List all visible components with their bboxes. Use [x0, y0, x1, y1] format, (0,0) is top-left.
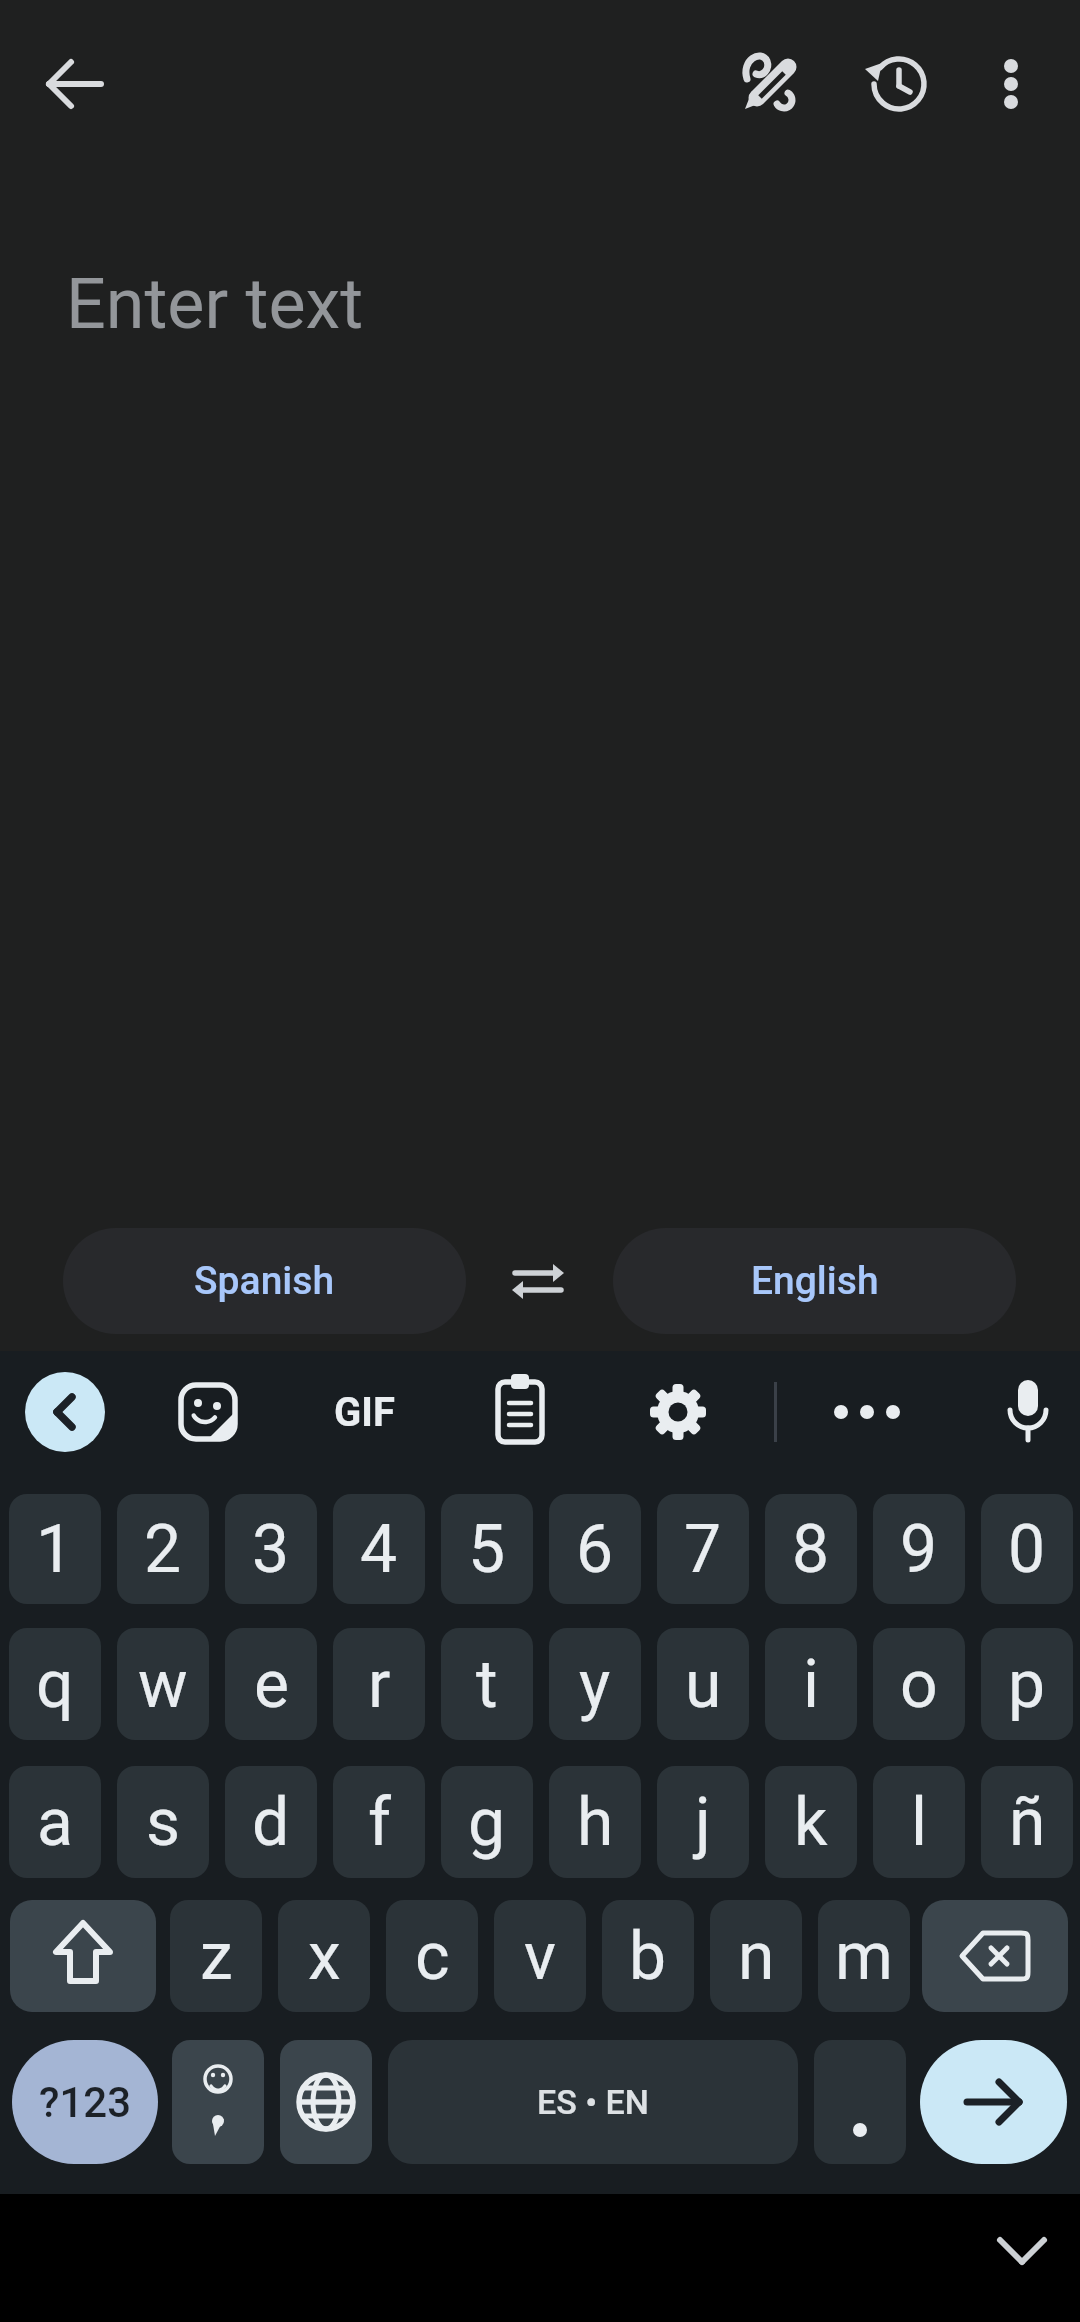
- staticText: 9: [900, 1511, 938, 1588]
- staticText: x: [308, 1918, 341, 1995]
- button[interactable]: [472, 1364, 568, 1460]
- button[interactable]: [10, 1900, 156, 2012]
- staticText: b: [629, 1918, 667, 1995]
- button[interactable]: y: [549, 1628, 641, 1740]
- button[interactable]: g: [441, 1766, 533, 1878]
- button[interactable]: h: [549, 1766, 641, 1878]
- button[interactable]: [922, 1900, 1068, 2012]
- staticText: GIF: [334, 1389, 395, 1436]
- staticText: w: [138, 1646, 188, 1723]
- staticText: ñ: [1009, 1784, 1046, 1861]
- button[interactable]: r: [333, 1628, 425, 1740]
- button[interactable]: q: [9, 1628, 101, 1740]
- button[interactable]: 9: [873, 1494, 965, 1604]
- staticText: y: [579, 1646, 611, 1723]
- button[interactable]: l: [873, 1766, 965, 1878]
- button[interactable]: v: [494, 1900, 586, 2012]
- staticText: a: [37, 1784, 73, 1861]
- button[interactable]: w: [117, 1628, 209, 1740]
- button[interactable]: [490, 1233, 586, 1329]
- staticText: p: [1008, 1646, 1046, 1723]
- staticText: Spanish: [194, 1258, 335, 1304]
- staticText: k: [794, 1784, 828, 1861]
- button[interactable]: c: [386, 1900, 478, 2012]
- button[interactable]: e: [225, 1628, 317, 1740]
- button[interactable]: [280, 2040, 372, 2164]
- staticText: Enter text: [66, 263, 364, 345]
- staticText: l: [911, 1784, 928, 1861]
- button[interactable]: m: [818, 1900, 910, 2012]
- button[interactable]: [819, 1364, 915, 1460]
- staticText: z: [200, 1918, 233, 1995]
- button[interactable]: 5: [441, 1494, 533, 1604]
- staticText: f: [368, 1784, 391, 1861]
- button[interactable]: [25, 1372, 105, 1452]
- button[interactable]: [814, 2040, 906, 2164]
- staticText: v: [524, 1918, 556, 1995]
- button[interactable]: 8: [765, 1494, 857, 1604]
- button[interactable]: [974, 2202, 1070, 2298]
- button[interactable]: i: [765, 1628, 857, 1740]
- staticText: 7: [684, 1511, 722, 1588]
- button[interactable]: x: [278, 1900, 370, 2012]
- button[interactable]: 0: [981, 1494, 1073, 1604]
- button[interactable]: z: [170, 1900, 262, 2012]
- staticText: j: [695, 1784, 711, 1861]
- button[interactable]: English: [613, 1228, 1016, 1334]
- staticText: s: [146, 1784, 181, 1861]
- button[interactable]: [963, 36, 1059, 132]
- staticText: t: [476, 1646, 498, 1723]
- button[interactable]: ES • EN: [388, 2040, 798, 2164]
- button[interactable]: o: [873, 1628, 965, 1740]
- button[interactable]: [630, 1364, 726, 1460]
- staticText: 6: [576, 1511, 614, 1588]
- button[interactable]: j: [657, 1766, 749, 1878]
- staticText: English: [751, 1258, 879, 1304]
- button[interactable]: [851, 36, 947, 132]
- button[interactable]: [920, 2040, 1067, 2164]
- staticText: u: [685, 1646, 722, 1723]
- staticText: ?123: [39, 2078, 132, 2127]
- staticText: 5: [468, 1511, 506, 1588]
- button[interactable]: u: [657, 1628, 749, 1740]
- staticText: ES • EN: [537, 2082, 649, 2122]
- staticText: h: [577, 1784, 614, 1861]
- button[interactable]: [25, 36, 121, 132]
- button[interactable]: ?123: [12, 2040, 158, 2164]
- staticText: 1: [36, 1511, 74, 1588]
- button[interactable]: 7: [657, 1494, 749, 1604]
- staticText: 4: [360, 1511, 398, 1588]
- button[interactable]: b: [602, 1900, 694, 2012]
- button[interactable]: 2: [117, 1494, 209, 1604]
- button[interactable]: [160, 1364, 256, 1460]
- staticText: 2: [144, 1511, 182, 1588]
- staticText: 0: [1008, 1511, 1046, 1588]
- button[interactable]: 4: [333, 1494, 425, 1604]
- button[interactable]: f: [333, 1766, 425, 1878]
- button[interactable]: a: [9, 1766, 101, 1878]
- button[interactable]: n: [710, 1900, 802, 2012]
- button[interactable]: [724, 36, 820, 132]
- button[interactable]: s: [117, 1766, 209, 1878]
- staticText: o: [900, 1646, 938, 1723]
- button[interactable]: p: [981, 1628, 1073, 1740]
- staticText: 3: [252, 1511, 290, 1588]
- button[interactable]: 3: [225, 1494, 317, 1604]
- button[interactable]: Spanish: [63, 1228, 466, 1334]
- button[interactable]: k: [765, 1766, 857, 1878]
- button[interactable]: t: [441, 1628, 533, 1740]
- staticText: m: [835, 1918, 893, 1995]
- button[interactable]: 6: [549, 1494, 641, 1604]
- staticText: q: [36, 1646, 74, 1723]
- button[interactable]: 1: [9, 1494, 101, 1604]
- button[interactable]: [172, 2040, 264, 2164]
- button[interactable]: [980, 1364, 1076, 1460]
- button[interactable]: d: [225, 1766, 317, 1878]
- button[interactable]: GIF: [316, 1364, 412, 1460]
- staticText: i: [803, 1646, 820, 1723]
- staticText: r: [368, 1646, 391, 1723]
- staticText: g: [468, 1784, 506, 1861]
- staticText: 8: [792, 1511, 830, 1588]
- button[interactable]: ñ: [981, 1766, 1073, 1878]
- staticText: e: [254, 1646, 289, 1723]
